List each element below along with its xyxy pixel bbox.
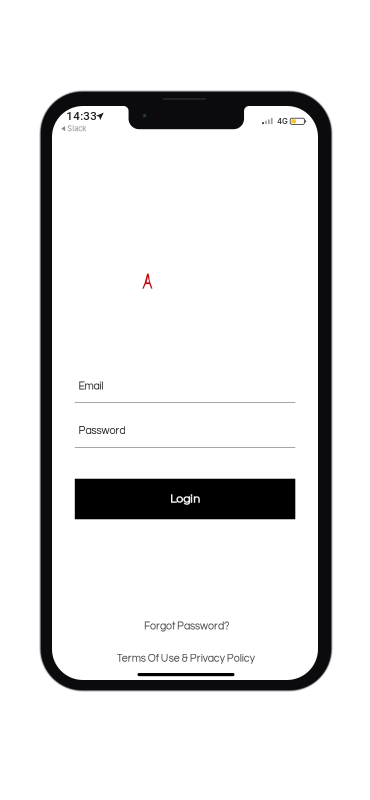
staticText: Slack <box>67 124 86 133</box>
button[interactable]: Login <box>75 479 295 519</box>
staticText: Password <box>78 425 125 436</box>
button[interactable]: Terms Of Use & Privacy Policy <box>96 650 276 666</box>
staticText: 14:33 <box>66 109 97 123</box>
staticText: Login <box>170 493 200 505</box>
button[interactable]: Forgot Password? <box>126 618 246 634</box>
staticText: Terms Of Use & Privacy Policy <box>117 653 255 664</box>
staticText: Forgot Password? <box>144 621 229 632</box>
staticText: Email <box>78 381 103 392</box>
staticText: 4G <box>277 116 288 126</box>
